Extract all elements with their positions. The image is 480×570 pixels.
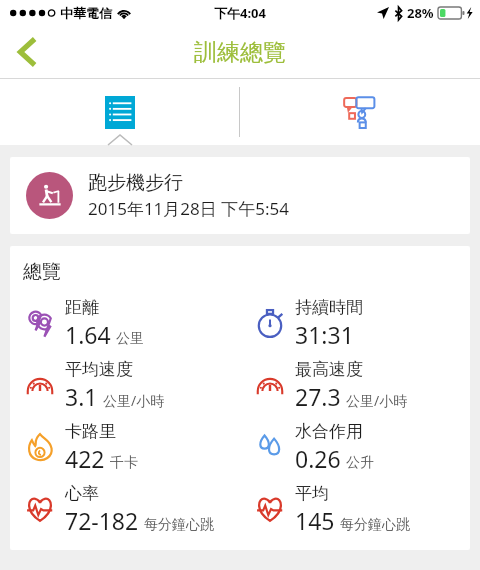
staticText: 0.26 bbox=[295, 443, 341, 474]
staticText: 每分鐘心跳 bbox=[340, 516, 410, 534]
staticText: 3.1 bbox=[65, 381, 98, 412]
button[interactable]: 水合作用 bbox=[253, 416, 470, 478]
staticText: 28% bbox=[407, 4, 434, 22]
button[interactable]: 平均速度 bbox=[23, 354, 240, 416]
button[interactable]: 最高速度 bbox=[253, 354, 470, 416]
staticText: 水合作用 bbox=[295, 421, 363, 442]
button[interactable]: Back bbox=[0, 26, 54, 78]
staticText: 持續時間 bbox=[295, 297, 363, 318]
button[interactable]: 距離 bbox=[23, 292, 240, 354]
staticText: 卡路里 bbox=[65, 421, 116, 442]
staticText: 2015年11月28日 下午5:54 bbox=[88, 197, 289, 220]
button[interactable]: Share view bbox=[240, 79, 480, 145]
button[interactable]: 跑步機步行 bbox=[10, 157, 470, 234]
staticText: 平均 bbox=[295, 483, 329, 504]
staticText: 公里/小時 bbox=[103, 391, 165, 410]
staticText: 千卡 bbox=[110, 454, 138, 472]
staticText: 距離 bbox=[65, 297, 99, 318]
staticText: 31:31 bbox=[295, 319, 354, 350]
staticText: 訓練總覽 bbox=[194, 38, 286, 67]
staticText: 422 bbox=[65, 443, 105, 474]
button[interactable]: List view bbox=[0, 79, 239, 145]
staticText: 心率 bbox=[65, 483, 99, 504]
staticText: 1.64 bbox=[65, 319, 111, 350]
staticText: 27.3 bbox=[295, 381, 341, 412]
staticText: 中華電信 bbox=[60, 5, 112, 21]
staticText: 公升 bbox=[346, 454, 374, 472]
staticText: 平均速度 bbox=[65, 359, 133, 380]
staticText: 跑步機步行 bbox=[88, 171, 183, 195]
staticText: 最高速度 bbox=[295, 359, 363, 380]
button[interactable]: 心率 bbox=[23, 478, 240, 540]
staticText: 每分鐘心跳 bbox=[144, 516, 214, 534]
button[interactable]: 平均 bbox=[253, 478, 470, 540]
button[interactable]: 持續時間 bbox=[253, 292, 470, 354]
staticText: 下午4:04 bbox=[214, 4, 266, 22]
staticText: 145 bbox=[295, 505, 335, 536]
staticText: 72-182 bbox=[65, 505, 139, 536]
staticText: 總覽 bbox=[23, 260, 61, 284]
staticText: 公里 bbox=[116, 330, 144, 348]
staticText: 公里/小時 bbox=[346, 391, 408, 410]
button[interactable]: 卡路里 bbox=[23, 416, 240, 478]
